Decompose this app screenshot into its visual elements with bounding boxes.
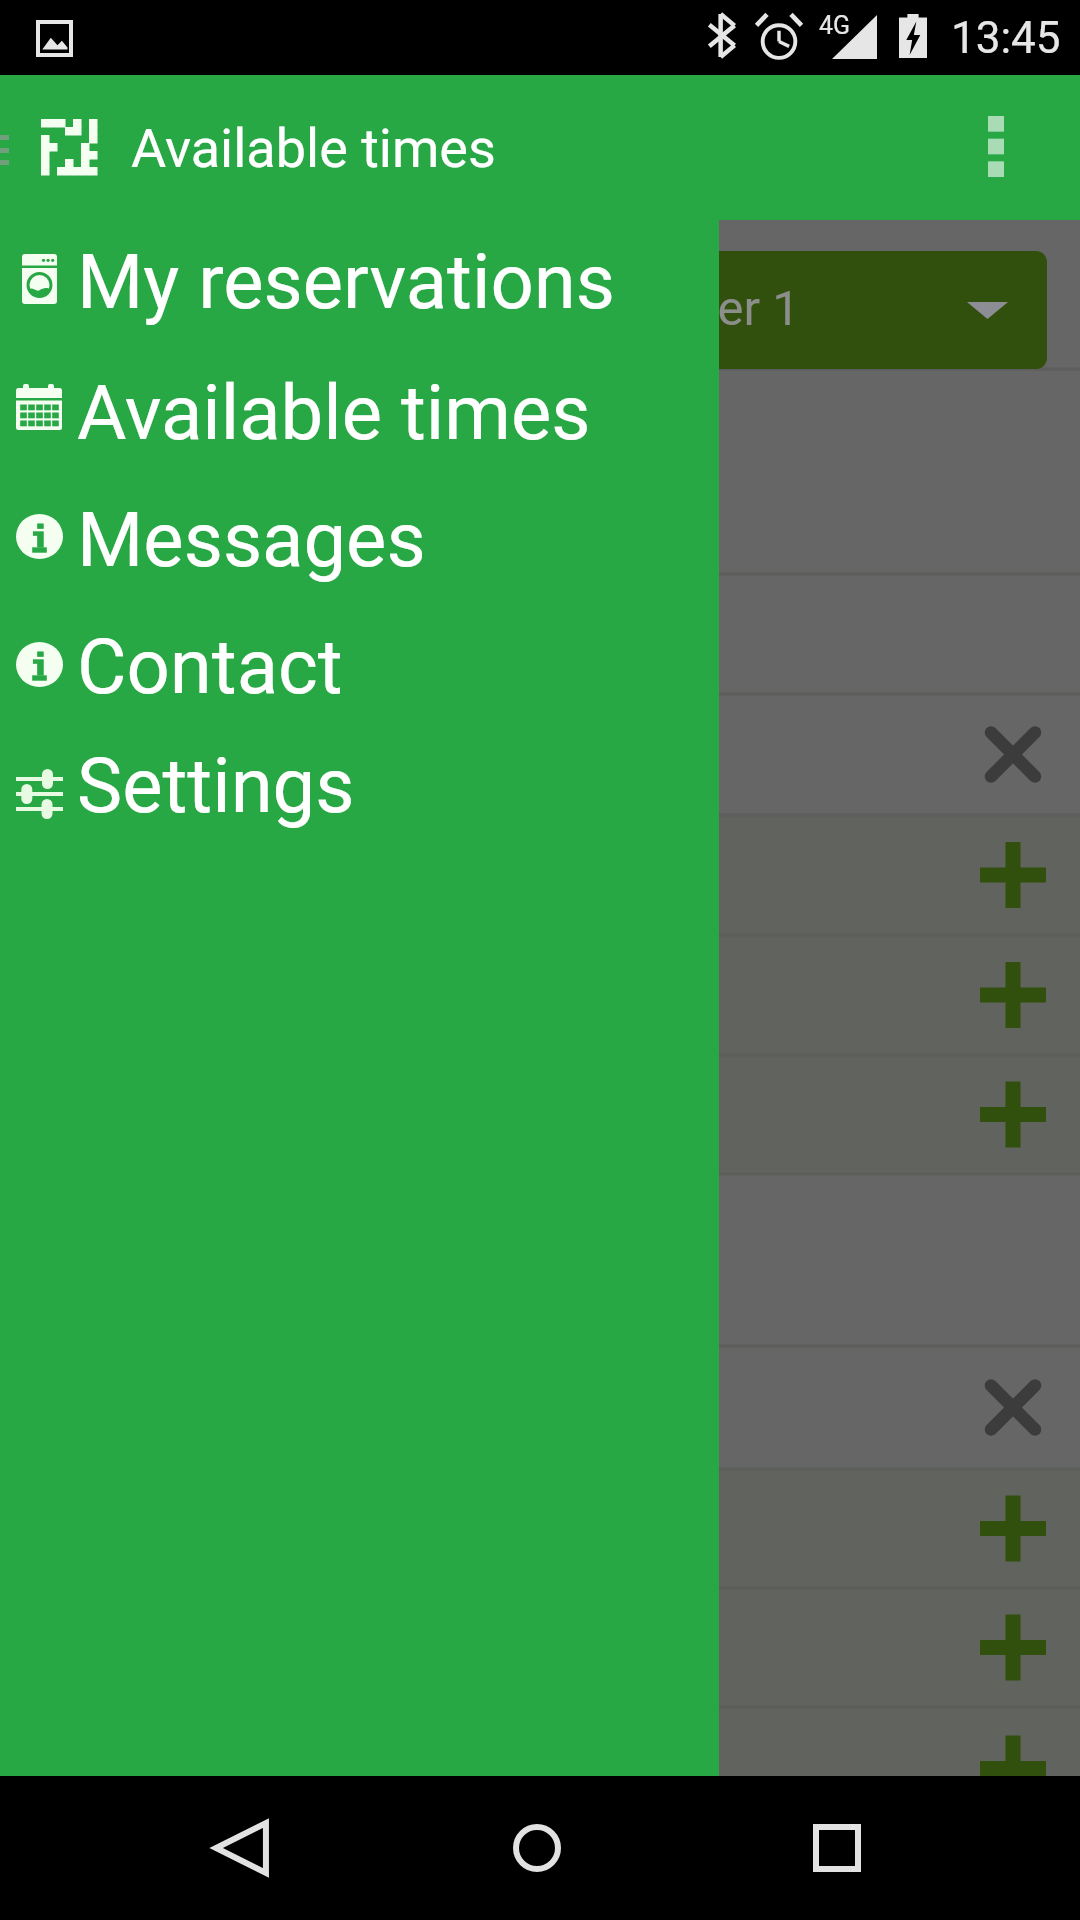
button[interactable]: Available times xyxy=(0,349,719,475)
button[interactable]: Contact xyxy=(0,603,719,729)
staticText: Settings xyxy=(77,741,355,830)
button[interactable]: Recent apps xyxy=(765,1776,909,1920)
button[interactable]: Open navigation drawer xyxy=(0,97,26,197)
staticText: 4G xyxy=(819,11,851,40)
button[interactable]: Home xyxy=(465,1776,609,1920)
staticText: 13:45 xyxy=(951,12,1061,64)
button[interactable]: Washer 1 xyxy=(40,251,1047,369)
button[interactable]: Messages xyxy=(0,476,719,602)
staticText: Contact xyxy=(77,622,343,711)
staticText: Available times xyxy=(131,117,496,180)
staticText: Washer 1 xyxy=(596,280,800,337)
button[interactable]: Settings xyxy=(0,722,719,848)
button[interactable]: My reservations xyxy=(0,218,719,344)
staticText: Available times xyxy=(77,368,591,457)
button[interactable]: Back xyxy=(169,1776,313,1920)
staticText: Messages xyxy=(77,495,426,584)
staticText: My reservations xyxy=(77,237,615,326)
button[interactable]: More options xyxy=(960,88,1032,208)
